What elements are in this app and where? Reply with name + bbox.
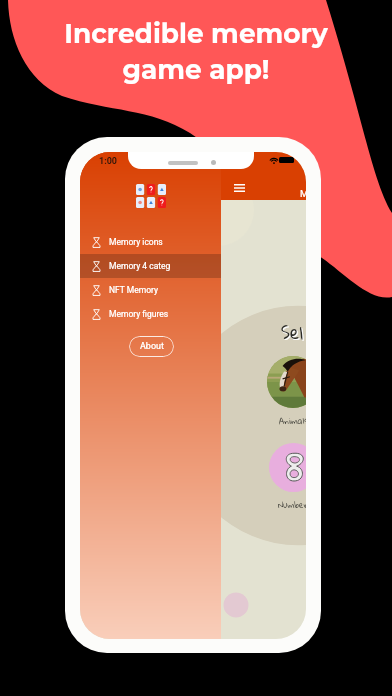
staticText: Incredible memory game app! (64, 17, 328, 85)
button[interactable]: Memory icons (80, 230, 221, 254)
button[interactable]: Memory 4 categ (80, 254, 221, 278)
staticText: Sel (282, 316, 305, 350)
button[interactable]: Animals category (267, 356, 306, 408)
button[interactable]: NFT Memory (80, 278, 221, 302)
staticText: Memory (300, 188, 306, 199)
button[interactable]: Numbers category (269, 443, 306, 492)
staticText: Sel (281, 315, 304, 349)
staticText: Animals (279, 413, 306, 429)
button[interactable]: Memory figures (80, 302, 221, 326)
staticText: 1:00 (99, 156, 118, 167)
staticText: Memory figures (109, 309, 169, 319)
button[interactable]: About (129, 336, 174, 357)
staticText: About (140, 341, 164, 352)
staticText: Memory icons (109, 237, 163, 247)
button[interactable]: Open navigation drawer (226, 175, 252, 201)
staticText: Numbers (278, 497, 306, 513)
staticText: NFT Memory (109, 285, 159, 295)
staticText: Memory 4 categ (109, 261, 171, 271)
